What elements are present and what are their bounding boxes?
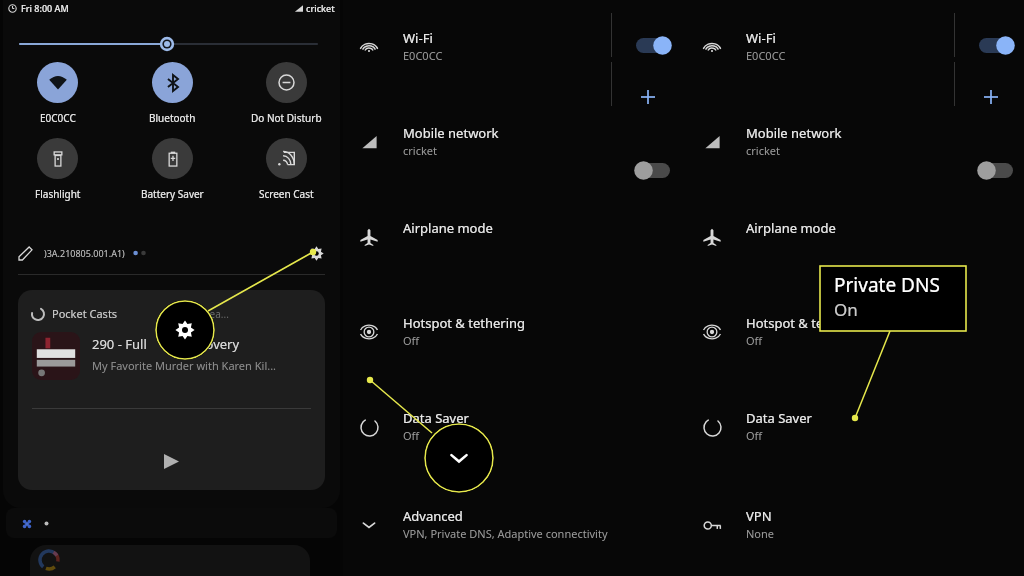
staticText: Wi-Fi	[746, 29, 776, 47]
button[interactable]: Data Saver	[686, 404, 1024, 450]
button[interactable]: Wi-Fi toggle	[974, 32, 1018, 58]
button[interactable]: Flashlight	[0, 138, 115, 201]
button[interactable]: Settings	[303, 240, 329, 266]
staticText: hone spea...	[172, 307, 229, 321]
button[interactable]: Airplane mode toggle	[974, 157, 1018, 183]
staticText: Off	[403, 428, 420, 443]
staticText: Data Saver	[403, 409, 469, 427]
staticText: E0C0CC	[403, 48, 443, 63]
button[interactable]: Airplane mode	[343, 214, 686, 260]
staticText: Bluetooth	[149, 111, 196, 125]
staticText: Flashlight	[35, 187, 81, 201]
staticText: E0C0CC	[746, 48, 786, 63]
button[interactable]: Wi-Fi toggle	[631, 32, 675, 58]
button[interactable]: Bluetooth	[115, 62, 229, 125]
staticText: VPN, Private DNS, Adaptive connectivity	[403, 526, 608, 541]
button[interactable]: Mobile network	[686, 119, 1024, 165]
button[interactable]: Airplane mode toggle	[631, 157, 675, 183]
button[interactable]: Wi-Fi	[686, 24, 1024, 70]
staticText: cricket	[746, 143, 780, 158]
staticText: Pocket Casts	[52, 306, 118, 321]
staticText: Screen Cast	[259, 187, 314, 201]
button[interactable]: Hotspot & tethering	[343, 309, 686, 355]
staticText: Off	[746, 428, 763, 443]
staticText: Wi-Fi	[403, 29, 433, 47]
button[interactable]: Screen Cast	[229, 138, 343, 201]
button[interactable]: Wi-Fi	[343, 24, 686, 70]
staticText: Mobile network	[403, 124, 499, 142]
staticText: My Favorite Murder with Karen Kil...	[92, 358, 277, 373]
button[interactable]: E0C0CC	[0, 62, 115, 125]
staticText: Mobile network	[746, 124, 842, 142]
button[interactable]: Battery Saver	[115, 138, 229, 201]
button[interactable]: Hotspot & tethering	[686, 309, 1024, 355]
staticText: Airplane mode	[403, 219, 493, 237]
staticText: Battery Saver	[141, 187, 204, 201]
button[interactable]: VPN	[686, 502, 1024, 548]
staticText: )3A.210805.001.A1)	[44, 247, 125, 259]
staticText: Hotspot & tethering	[746, 314, 869, 332]
button[interactable]: Advanced	[343, 502, 686, 548]
button[interactable]: Edit	[14, 242, 36, 264]
staticText: Hotspot & tethering	[403, 314, 526, 332]
button[interactable]: Do Not Disturb	[229, 62, 343, 125]
button[interactable]: Airplane mode	[686, 214, 1024, 260]
staticText: cricket	[306, 2, 335, 14]
staticText: Do Not Disturb	[251, 111, 322, 125]
staticText: Private DNS	[834, 272, 940, 298]
staticText: 290 - Full Recovery	[92, 335, 240, 353]
staticText: On	[834, 298, 858, 321]
staticText: VPN	[746, 507, 772, 525]
staticText: Fri 8:00 AM	[21, 2, 69, 14]
button[interactable]: Mobile network	[343, 119, 686, 165]
staticText: Off	[403, 333, 420, 348]
staticText: cricket	[403, 143, 437, 158]
staticText: Advanced	[403, 507, 463, 525]
staticText: Data Saver	[746, 409, 812, 427]
staticText: Airplane mode	[746, 219, 836, 237]
button[interactable]: Add network	[974, 80, 1008, 114]
staticText: None	[746, 526, 775, 541]
button[interactable]: Data Saver	[343, 404, 686, 450]
button[interactable]: Add network	[631, 80, 665, 114]
staticText: Off	[746, 333, 763, 348]
button[interactable]: Play	[158, 448, 184, 474]
staticText: E0C0CC	[40, 111, 76, 125]
button[interactable]: Pocket Casts	[18, 290, 325, 490]
